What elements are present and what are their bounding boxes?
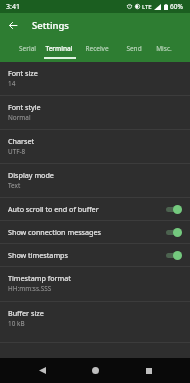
staticText: 14 [8, 79, 16, 88]
button[interactable]: Terminal [43, 38, 75, 59]
button[interactable]: Timestamp format [0, 267, 190, 302]
staticText: Serial [19, 44, 36, 53]
button[interactable]: Misc. [150, 38, 177, 59]
button[interactable]: Recent apps [136, 358, 161, 383]
button[interactable]: Back [30, 358, 55, 383]
staticText: 10 kB [8, 319, 25, 328]
staticText: Show timestamps [8, 250, 166, 260]
button[interactable]: Font style [0, 96, 190, 130]
staticText: HH:mm:ss.SSS [8, 284, 52, 293]
button[interactable]: Auto scroll to end of buffer [0, 198, 190, 221]
button[interactable]: Buffer size [0, 302, 190, 343]
staticText: Font size [8, 68, 38, 78]
button[interactable]: Show timestamps [0, 244, 190, 267]
staticText: Timestamp format [8, 273, 71, 283]
staticText: Receive [85, 44, 109, 53]
staticText: 60% [170, 2, 183, 11]
staticText: LTE [142, 3, 152, 11]
staticText: Text [8, 181, 21, 190]
button[interactable]: Font size [0, 62, 190, 96]
button[interactable]: Charset [0, 130, 190, 164]
staticText: Send [126, 44, 142, 53]
staticText: Charset [8, 136, 35, 146]
staticText: UTF-8 [8, 147, 26, 156]
staticText: Show connection messages [8, 227, 166, 237]
staticText: Normal [8, 113, 31, 122]
staticText: Display mode [8, 170, 54, 180]
button[interactable]: Show connection messages [0, 221, 190, 244]
button[interactable]: Serial [12, 38, 43, 59]
staticText: Buffer size [8, 308, 44, 318]
staticText: Auto scroll to end of buffer [8, 204, 166, 214]
button[interactable]: Receive [78, 38, 115, 59]
button[interactable]: Send [118, 38, 150, 59]
staticText: Terminal [45, 44, 73, 53]
staticText: Font style [8, 102, 41, 112]
button[interactable]: Display mode [0, 164, 190, 198]
staticText: Settings [32, 19, 69, 32]
staticText: 3:41 [6, 2, 20, 12]
button[interactable]: Home [83, 358, 108, 383]
button[interactable]: Back [0, 13, 26, 38]
staticText: Misc. [156, 44, 172, 53]
